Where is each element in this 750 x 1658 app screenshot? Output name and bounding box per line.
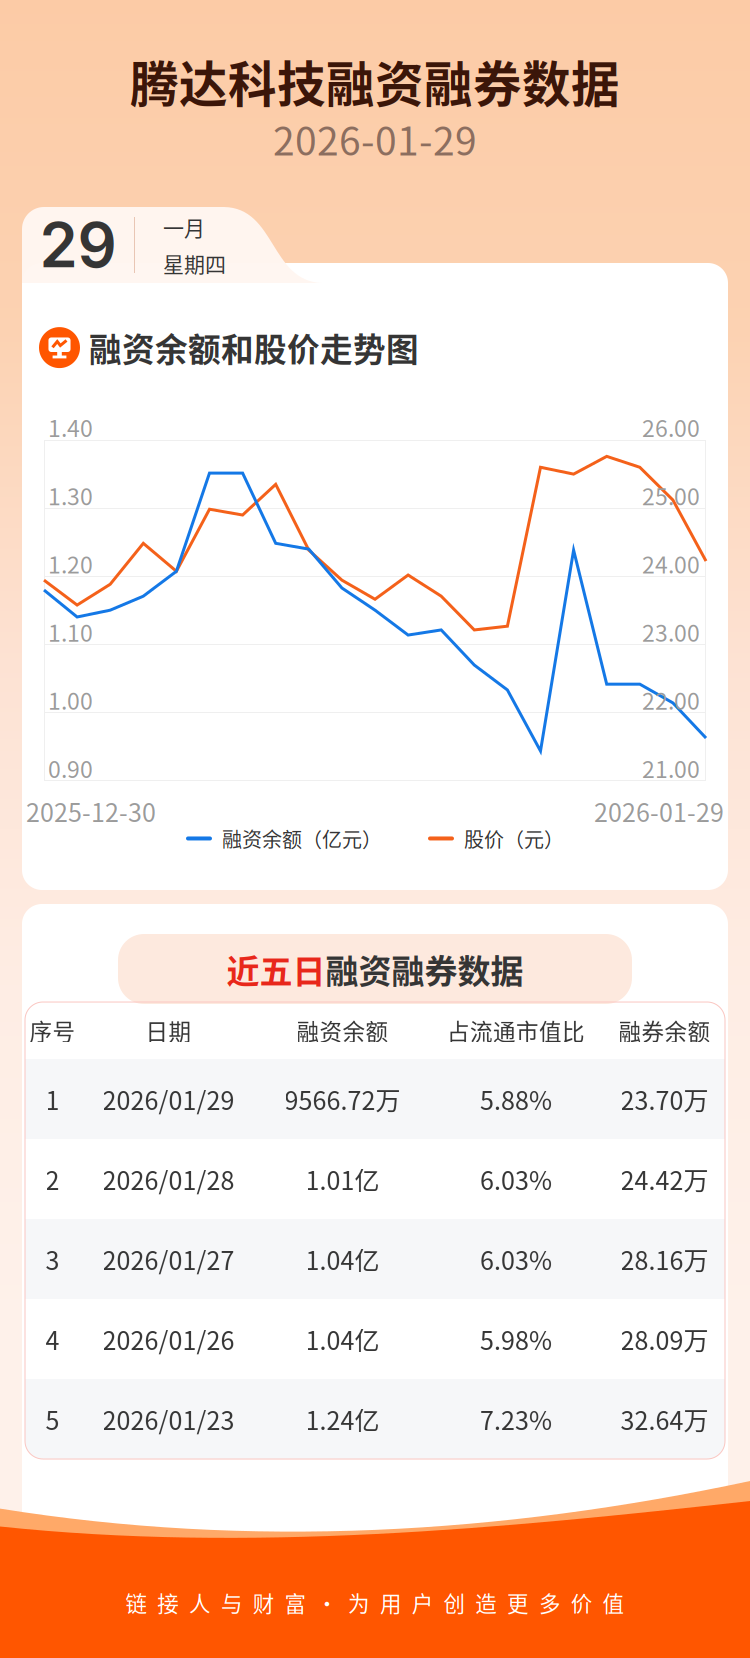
staticText: 2026/01/26 <box>102 1321 234 1357</box>
staticText: 1.10 <box>48 615 93 648</box>
staticText: 5.88% <box>480 1081 552 1117</box>
staticText: 2026/01/27 <box>102 1241 234 1277</box>
staticText: 2026/01/23 <box>102 1401 234 1437</box>
staticText: 融资余额 <box>296 1014 388 1047</box>
staticText: 1.04亿 <box>305 1321 379 1357</box>
staticText: 22.00 <box>642 683 700 716</box>
staticText: 21.00 <box>642 751 700 785</box>
staticText: 25.00 <box>642 478 700 512</box>
staticText: 融资余额（亿元） <box>222 824 382 853</box>
staticText: 1.40 <box>48 410 93 444</box>
staticText: 32.64万 <box>620 1401 708 1437</box>
staticText: 2026/01/28 <box>102 1161 234 1197</box>
staticText: 6.03% <box>480 1241 552 1277</box>
staticText: 1.04亿 <box>305 1241 379 1277</box>
staticText: 7.23% <box>480 1401 552 1437</box>
staticText: 链接人与财富·为用户创造更多价值 <box>125 1587 624 1618</box>
staticText: 融资融券数据 <box>325 945 523 993</box>
staticText: 9566.72万 <box>284 1081 400 1117</box>
staticText: 股价（元） <box>464 824 564 853</box>
staticText: 5 <box>45 1401 59 1437</box>
staticText: 1.00 <box>48 683 93 716</box>
staticText: 24.42万 <box>620 1161 708 1197</box>
staticText: 6.03% <box>480 1161 552 1197</box>
staticText: 占流通市值比 <box>447 1014 585 1047</box>
staticText: 腾达科技融资融券数据 <box>130 46 620 116</box>
staticText: 1.01亿 <box>305 1161 379 1197</box>
staticText: 一月 <box>163 212 205 242</box>
staticText: 1.20 <box>48 547 93 580</box>
staticText: 28.16万 <box>620 1241 708 1277</box>
staticText: 2026/01/29 <box>102 1081 234 1117</box>
staticText: 1 <box>45 1081 59 1117</box>
staticText: 5.98% <box>480 1321 552 1357</box>
staticText: 融资余额和股价走势图 <box>89 324 419 371</box>
staticText: 1.24亿 <box>305 1401 379 1437</box>
staticText: 2 <box>45 1161 59 1197</box>
staticText: 星期四 <box>163 248 226 278</box>
staticText: 0.90 <box>48 751 93 785</box>
staticText: 28.09万 <box>620 1321 708 1357</box>
staticText: 融券余额 <box>618 1014 710 1047</box>
staticText: 24.00 <box>642 547 700 580</box>
staticText: 序号 <box>29 1014 75 1047</box>
staticText: 23.00 <box>642 615 700 648</box>
staticText: 2025-12-30 <box>26 793 156 829</box>
staticText: 3 <box>45 1241 59 1277</box>
staticText: 26.00 <box>642 410 700 444</box>
staticText: 日期 <box>145 1014 191 1047</box>
staticText: 23.70万 <box>620 1081 708 1117</box>
staticText: 1.30 <box>48 478 93 512</box>
staticText: 2026-01-29 <box>594 793 724 829</box>
staticText: 近五日 <box>226 945 325 993</box>
staticText: 2026-01-29 <box>273 110 477 167</box>
staticText: 29 <box>39 208 116 282</box>
staticText: 4 <box>45 1321 59 1357</box>
